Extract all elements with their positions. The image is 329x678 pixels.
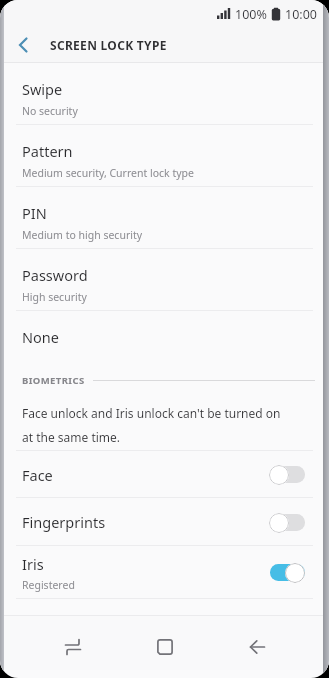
staticText: No security [22, 104, 78, 118]
staticText: PIN [22, 203, 47, 223]
staticText: BIOMETRICS [22, 374, 85, 387]
staticText: Face [22, 465, 53, 485]
button[interactable]: Fingerprints [0, 498, 329, 546]
button[interactable] [0, 28, 48, 62]
staticText: Swipe [22, 79, 63, 99]
staticText: Fingerprints [22, 512, 106, 532]
staticText: Password [22, 265, 88, 285]
button[interactable]: Pattern [0, 125, 329, 187]
button[interactable]: Iris [0, 546, 329, 599]
button[interactable]: None [0, 311, 329, 373]
button[interactable]: Swipe [0, 63, 329, 125]
button[interactable] [269, 464, 305, 485]
button[interactable] [245, 635, 269, 659]
staticText: High security [22, 290, 87, 304]
staticText: 10:00 [285, 6, 317, 23]
button[interactable]: Password [0, 249, 329, 311]
button[interactable]: Face [0, 451, 329, 498]
staticText: Face unlock and Iris unlock can't be tur… [22, 405, 281, 445]
staticText: Registered [22, 578, 75, 592]
button[interactable] [61, 635, 85, 659]
staticText: Medium to high security [22, 228, 143, 242]
staticText: None [22, 327, 59, 347]
staticText: Pattern [22, 141, 73, 161]
staticText: SCREEN LOCK TYPE [50, 37, 167, 53]
button[interactable] [269, 512, 305, 533]
staticText: Iris [22, 554, 44, 574]
button[interactable] [153, 635, 177, 659]
button[interactable]: PIN [0, 187, 329, 249]
button[interactable] [269, 562, 305, 583]
staticText: Medium security, Current lock type [22, 166, 194, 180]
staticText: 100% [235, 6, 267, 23]
